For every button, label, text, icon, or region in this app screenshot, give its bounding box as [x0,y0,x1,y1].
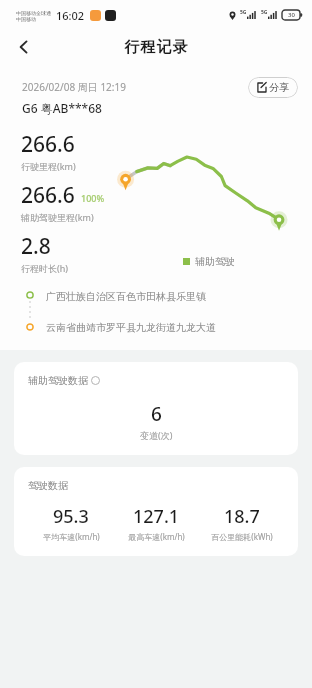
staticText: 驾驶数据 [28,479,68,492]
staticText: 中国移动 [16,16,36,22]
staticText: 95.3 [53,504,89,529]
staticText: 行程记录 [124,38,188,57]
staticText: 百公里能耗(kWh) [211,531,273,542]
staticText: 辅助驾驶 [195,255,235,268]
staticText: 变道(次) [140,429,173,441]
staticText: 行驶里程(km) [21,160,76,172]
staticText: 分享 [269,81,289,94]
staticText: 266.6 [21,181,75,210]
button[interactable]: 辅助驾驶数据 [14,362,298,455]
staticText: 100% [81,192,105,204]
staticText: 18.7 [224,504,260,529]
staticText: 266.6 [21,130,75,159]
staticText: 最高车速(km/h) [128,531,185,542]
staticText: 2026/02/08 周日 12:19 [22,80,126,94]
staticText: 平均车速(km/h) [43,531,100,542]
staticText: 云南省曲靖市罗平县九龙街道九龙大道 [46,321,216,334]
staticText: 5G [240,9,247,16]
staticText: 30 [288,11,295,19]
button[interactable]: 驾驶数据 [14,467,298,556]
staticText: 16:02 [56,8,85,23]
button[interactable]: 分享 [248,77,298,98]
staticText: 中国移动全球通 [16,10,51,16]
staticText: 6 [151,401,162,427]
staticText: 2.8 [21,232,51,261]
staticText: 127.1 [133,504,180,529]
staticText: 行程时长(h) [21,262,68,274]
staticText: 辅助驾驶里程(km) [21,211,94,223]
staticText: G6 粤AB***68 [22,100,102,116]
staticText: 辅助驾驶数据 [28,374,88,387]
button[interactable]: Back [8,31,40,63]
staticText: 5G [261,9,268,16]
staticText: 广西壮族自治区百色市田林县乐里镇 [46,290,206,303]
